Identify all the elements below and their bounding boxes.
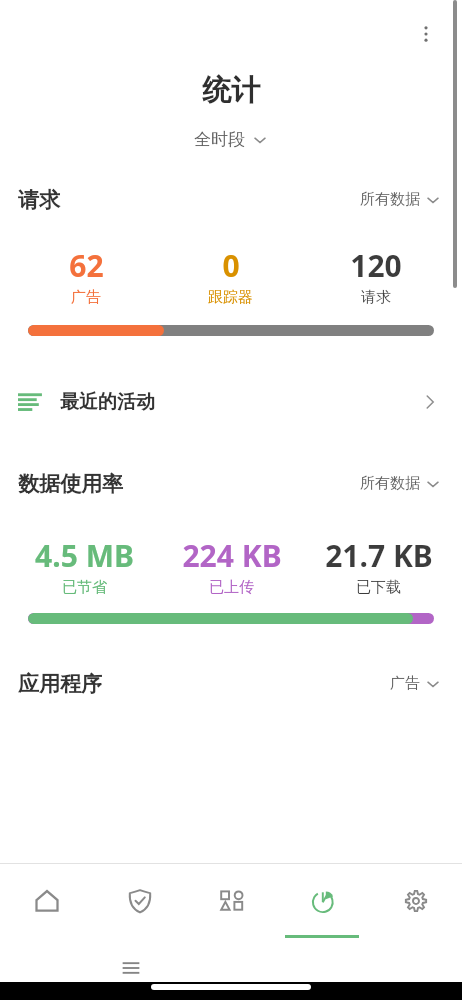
button[interactable]: Home [0,864,93,938]
staticText: 全时段 [194,129,245,150]
staticText: 120 [350,245,402,286]
staticText: 统计 [0,72,462,109]
button[interactable]: Statistics [278,864,370,938]
staticText: 请求 [361,288,391,307]
staticText: 广告 [71,288,101,307]
staticText: 数据使用率 [18,471,123,497]
staticText: 所有数据 [360,474,420,493]
staticText: 已下载 [356,578,401,597]
button[interactable]: More options [404,12,448,56]
staticText: 请求 [18,187,60,213]
staticText: 224 KB [182,535,282,576]
staticText: 21.7 KB [325,535,433,576]
staticText: 所有数据 [360,190,420,209]
button[interactable]: Menu [109,946,153,990]
button[interactable]: 广告 [390,670,442,697]
staticText: 跟踪器 [208,288,253,307]
staticText: 4.5 MB [35,535,134,576]
staticText: 0 [222,245,240,286]
button[interactable]: Settings [370,864,462,938]
staticText: 62 [69,245,104,286]
staticText: 最近的活动 [60,390,155,414]
button[interactable]: 全时段 [186,125,277,154]
staticText: 已上传 [209,578,254,597]
button[interactable]: 所有数据 [360,470,442,497]
staticText: 已节省 [62,578,107,597]
staticText: 广告 [390,674,420,693]
button[interactable]: 最近的活动 [0,376,462,428]
button[interactable]: Apps [186,864,278,938]
staticText: 应用程序 [18,671,102,697]
button[interactable]: Protection [93,864,186,938]
button[interactable]: 所有数据 [360,186,442,213]
